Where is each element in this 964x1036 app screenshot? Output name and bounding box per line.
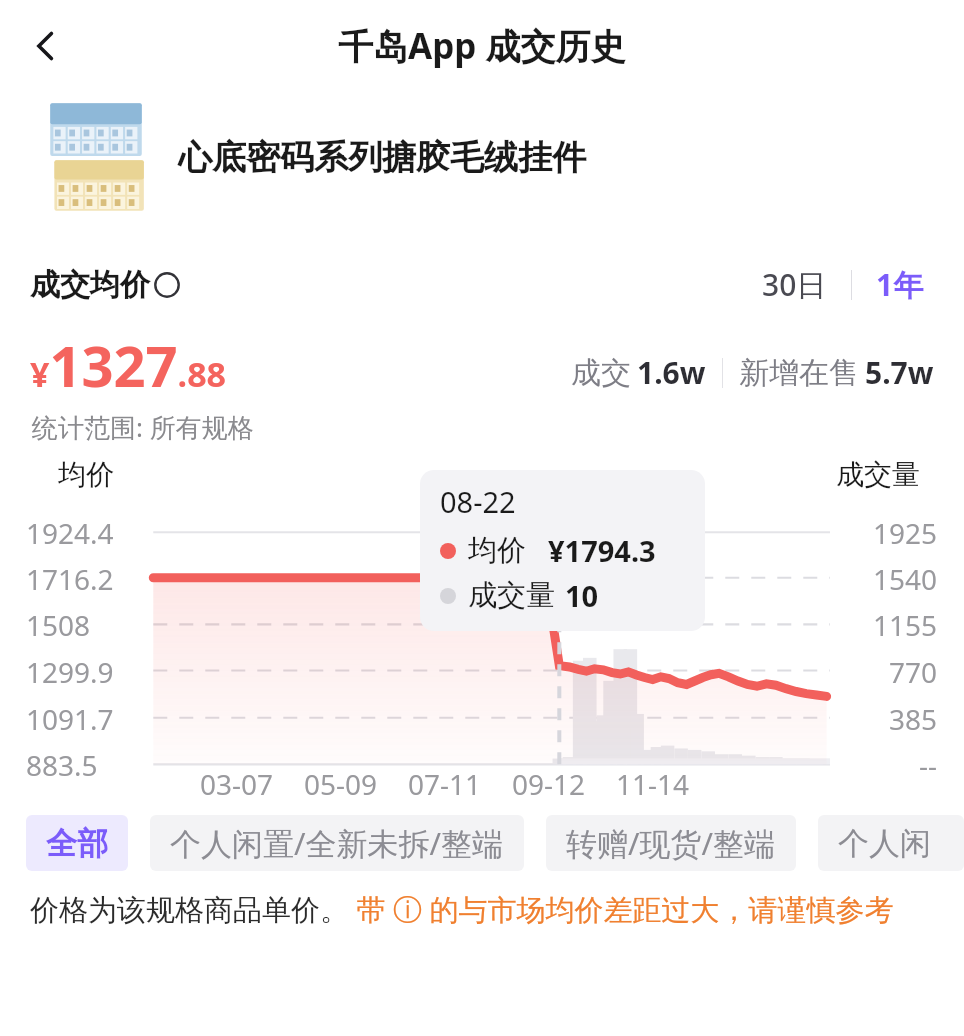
staticText: 1091.7 <box>26 700 114 738</box>
staticText: 均价 <box>58 457 114 492</box>
staticText: 全部 <box>46 824 108 863</box>
button[interactable]: 30日 <box>752 260 837 309</box>
staticText: 09-12 <box>512 765 586 803</box>
button[interactable]: Back <box>14 14 78 78</box>
staticText: 1540 <box>873 560 938 598</box>
staticText: 5.7w <box>865 352 934 393</box>
staticText: 11-14 <box>616 765 690 803</box>
button[interactable]: 全部 <box>26 815 128 871</box>
staticText: 新增在售 <box>739 354 859 392</box>
staticText: 1508 <box>26 606 91 644</box>
staticText: 08-22 <box>440 482 516 521</box>
button[interactable]: 1年 <box>866 260 934 309</box>
staticText: 1925 <box>873 514 938 552</box>
staticText: 883.5 <box>26 746 98 784</box>
staticText: 1年 <box>876 264 924 305</box>
staticText: 个人闲置/全新未拆/整端 <box>170 822 504 864</box>
staticText: 385 <box>889 700 938 738</box>
staticText: 770 <box>889 653 938 691</box>
staticText: 成交量 <box>468 577 555 614</box>
staticText: 统计范围: 所有规格 <box>32 409 254 445</box>
staticText: 价格为该规格商品单价。 带 ⓘ 的与市场均价差距过大，请谨慎参考 <box>30 889 894 929</box>
staticText: 个人闲置 <box>838 824 944 863</box>
staticText: 1299.9 <box>26 653 114 691</box>
staticText: 成交量 <box>836 457 920 492</box>
staticText: 均价 <box>468 532 526 569</box>
staticText: 1.6w <box>637 352 706 393</box>
staticText: 1924.4 <box>26 514 114 552</box>
button[interactable]: 心底密码系列搪胶毛绒挂件 <box>0 92 964 222</box>
staticText: ¥1327.88 <box>30 327 227 403</box>
staticText: 成交均价 <box>30 266 150 304</box>
button[interactable]: 转赠/现货/整端 <box>546 815 796 871</box>
staticText: 10 <box>565 576 599 615</box>
staticText: 心底密码系列搪胶毛绒挂件 <box>178 136 586 179</box>
staticText: 05-09 <box>304 765 378 803</box>
staticText: 转赠/现货/整端 <box>566 822 776 864</box>
staticText: 03-07 <box>200 765 274 803</box>
staticText: -- <box>919 746 938 784</box>
button[interactable]: 个人闲置/全新未拆/整端 <box>150 815 524 871</box>
button[interactable]: 个人闲置 <box>818 815 964 871</box>
staticText: 1155 <box>873 606 938 644</box>
staticText: 1716.2 <box>26 560 114 598</box>
staticText: 30日 <box>762 264 827 305</box>
staticText: 成交 <box>571 354 631 392</box>
staticText: 07-11 <box>408 765 482 803</box>
button[interactable]: 成交均价 <box>30 266 180 304</box>
staticText: 千岛App 成交历史 <box>338 22 626 70</box>
staticText: ¥1794.3 <box>548 531 656 570</box>
